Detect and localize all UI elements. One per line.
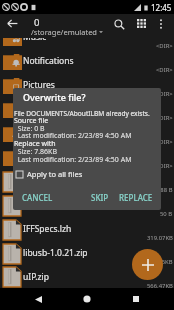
staticText: 50 B: [160, 210, 173, 218]
staticText: 0: [34, 16, 40, 29]
staticText: <DIR>: [156, 90, 173, 98]
staticText: <DIR>: [156, 66, 173, 74]
button[interactable]: SKIP: [89, 190, 111, 205]
button[interactable]: uIP.zip: [0, 266, 174, 288]
staticText: Pictures: [23, 79, 171, 91]
button[interactable]: Podcasts: [0, 98, 174, 122]
staticText: REPLACE: [119, 192, 153, 203]
button[interactable]: Home: [76, 288, 98, 310]
button[interactable]: REPLACE: [117, 190, 155, 205]
button[interactable]: Pictures: [0, 74, 174, 98]
button[interactable]: Grid view: [132, 14, 152, 34]
staticText: Size: 0 B: [14, 124, 45, 134]
staticText: Source file: [14, 116, 49, 126]
button[interactable]: Apply to all files: [16, 169, 83, 179]
staticText: File DOCUMENTS/AboutILBM already exists.: [14, 109, 150, 118]
staticText: Podcasts: [23, 103, 171, 115]
button[interactable]: autorun.inf: [0, 170, 174, 194]
staticText: Size: 7.86KB: [14, 147, 57, 157]
button[interactable]: hosts.txt: [0, 194, 174, 218]
staticText: DOCUMENTS: [23, 151, 171, 163]
staticText: hosts.txt: [23, 199, 171, 211]
button[interactable]: Recents: [125, 288, 147, 310]
staticText: autorun.inf: [23, 175, 171, 187]
staticText: uIP.zip: [23, 271, 171, 283]
staticText: <DIR>: [156, 138, 173, 146]
staticText: Music: [23, 31, 171, 43]
staticText: Notifications: [23, 55, 171, 67]
staticText: CANCEL: [22, 192, 53, 203]
staticText: Ringtones: [23, 127, 171, 139]
button[interactable]: Search: [109, 14, 129, 34]
button[interactable]: DOCUMENTS: [0, 146, 174, 170]
staticText: 1,123.5KB: [145, 258, 173, 266]
staticText: <DIR>: [156, 42, 173, 50]
button[interactable]: CANCEL: [20, 190, 55, 205]
staticText: IFFSpecs.lzh: [23, 223, 171, 235]
staticText: Last modification: 2/23/89 4:50 AM: [14, 155, 132, 165]
staticText: Overwrite file?: [23, 91, 86, 103]
staticText: SKIP: [91, 192, 109, 203]
button[interactable]: Ringtones: [0, 122, 174, 146]
staticText: <DIR>: [156, 114, 173, 122]
staticText: libusb-1.0.21.zip: [23, 247, 171, 259]
button[interactable]: Music: [0, 26, 174, 50]
staticText: <DIR>: [156, 162, 173, 170]
staticText: Apply to all files: [27, 169, 83, 179]
button[interactable]: More options: [151, 14, 171, 34]
button[interactable]: Add: [132, 249, 163, 280]
staticText: 319.07KB: [147, 234, 173, 242]
staticText: Replace with: [14, 139, 56, 149]
staticText: Last modification: 2/23/89 4:50 AM: [14, 131, 132, 141]
staticText: 566.47KB: [147, 282, 173, 290]
staticText: 188 B: [157, 186, 173, 194]
staticText: 12:45: [151, 2, 172, 13]
button[interactable]: IFFSpecs.lzh: [0, 218, 174, 242]
button[interactable]: Back: [27, 288, 49, 310]
staticText: /storage/emulated: [31, 27, 97, 37]
button[interactable]: libusb-1.0.21.zip: [0, 242, 174, 266]
button[interactable]: Back: [2, 13, 22, 33]
button[interactable]: Notifications: [0, 50, 174, 74]
